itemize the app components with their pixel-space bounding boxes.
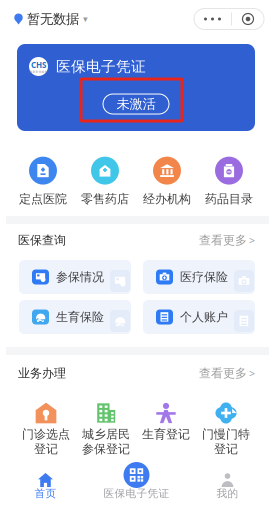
button[interactable]: 门慢门特 — [196, 401, 256, 457]
staticText: 定点医院 — [19, 192, 67, 206]
staticText: 医保查询 — [18, 233, 66, 248]
staticText: 国家医保服务 — [29, 70, 47, 73]
staticText: 医保电子凭证 — [103, 487, 169, 500]
staticText: 查看更多 — [199, 366, 247, 381]
button[interactable]: Close — [232, 8, 264, 29]
staticText: 查看更多 — [199, 233, 247, 248]
staticText: 个人账户 — [180, 310, 228, 324]
staticText: 暂无数据 — [27, 11, 79, 27]
staticText: 城乡居民 — [82, 427, 130, 442]
staticText: ▾ — [83, 14, 88, 24]
button[interactable]: 个人账户 — [143, 300, 255, 334]
staticText: 医疗保险 — [180, 270, 228, 284]
button[interactable]: 生育登记 — [136, 401, 196, 457]
button[interactable]: 首页 — [0, 463, 91, 514]
staticText: 参保情况 — [56, 270, 104, 284]
staticText: > — [249, 233, 255, 247]
button[interactable]: 药品目录 — [198, 158, 260, 205]
button[interactable]: 生育保险 — [19, 300, 131, 334]
staticText: 零售药店 — [81, 192, 129, 206]
button[interactable]: 未激活 — [103, 94, 169, 114]
staticText: > — [249, 366, 255, 380]
staticText: 生育登记 — [142, 427, 190, 442]
button[interactable]: More — [194, 8, 231, 29]
button[interactable]: 城乡居民 — [76, 401, 136, 457]
button[interactable]: 定点医院 — [12, 158, 74, 205]
button[interactable]: 门诊选点 — [16, 401, 76, 457]
button[interactable]: 查看更多 — [199, 233, 255, 248]
staticText: 我的 — [216, 487, 238, 500]
staticText: 未激活 — [116, 96, 155, 112]
staticText: 业务办理 — [18, 366, 66, 381]
staticText: 门慢门特 — [202, 427, 250, 442]
button[interactable]: 医疗保险 — [143, 260, 255, 294]
staticText: 药品目录 — [205, 192, 253, 206]
staticText: CHS — [31, 59, 46, 70]
button[interactable]: 零售药店 — [74, 158, 136, 205]
staticText: 参保登记 — [82, 442, 130, 456]
staticText: 生育保险 — [56, 310, 104, 324]
staticText: 门诊选点 — [22, 427, 70, 442]
button[interactable]: 参保情况 — [19, 260, 131, 294]
button[interactable]: 经办机构 — [136, 158, 198, 205]
button[interactable]: 医保电子凭证 — [91, 463, 182, 514]
staticText: 医保电子凭证 — [56, 57, 146, 75]
staticText: 首页 — [34, 487, 56, 500]
button[interactable]: 查看更多 — [199, 366, 255, 381]
staticText: 经办机构 — [143, 192, 191, 206]
staticText: 登记 — [34, 442, 58, 456]
staticText: 登记 — [214, 442, 238, 456]
button[interactable]: 我的 — [182, 463, 273, 514]
